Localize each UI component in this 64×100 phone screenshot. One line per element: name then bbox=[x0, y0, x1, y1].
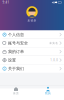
staticText: 未实名 bbox=[49, 41, 58, 45]
button[interactable]: 账号与安全 bbox=[0, 39, 64, 47]
button[interactable]: 设置 bbox=[0, 56, 64, 64]
staticText: 9:41 bbox=[3, 1, 10, 4]
button[interactable]: 个人信息 bbox=[0, 30, 64, 39]
staticText: 账号与安全 bbox=[8, 41, 28, 45]
staticText: 我的订单 bbox=[8, 49, 24, 54]
staticText: 我的 bbox=[45, 92, 51, 95]
staticText: 个人信息 bbox=[8, 32, 24, 37]
button[interactable]: 首页 bbox=[0, 86, 32, 95]
staticText: 1.0.0 bbox=[50, 58, 58, 62]
button[interactable]: 我的订单 bbox=[0, 47, 64, 56]
staticText: 关于我们 bbox=[8, 66, 24, 71]
staticText: 未登录 bbox=[27, 19, 36, 22]
staticText: 设置 bbox=[8, 58, 16, 62]
button[interactable]: 关于我们 bbox=[0, 64, 64, 73]
staticText: 首页 bbox=[13, 92, 19, 95]
button[interactable]: 我的 bbox=[32, 86, 64, 95]
